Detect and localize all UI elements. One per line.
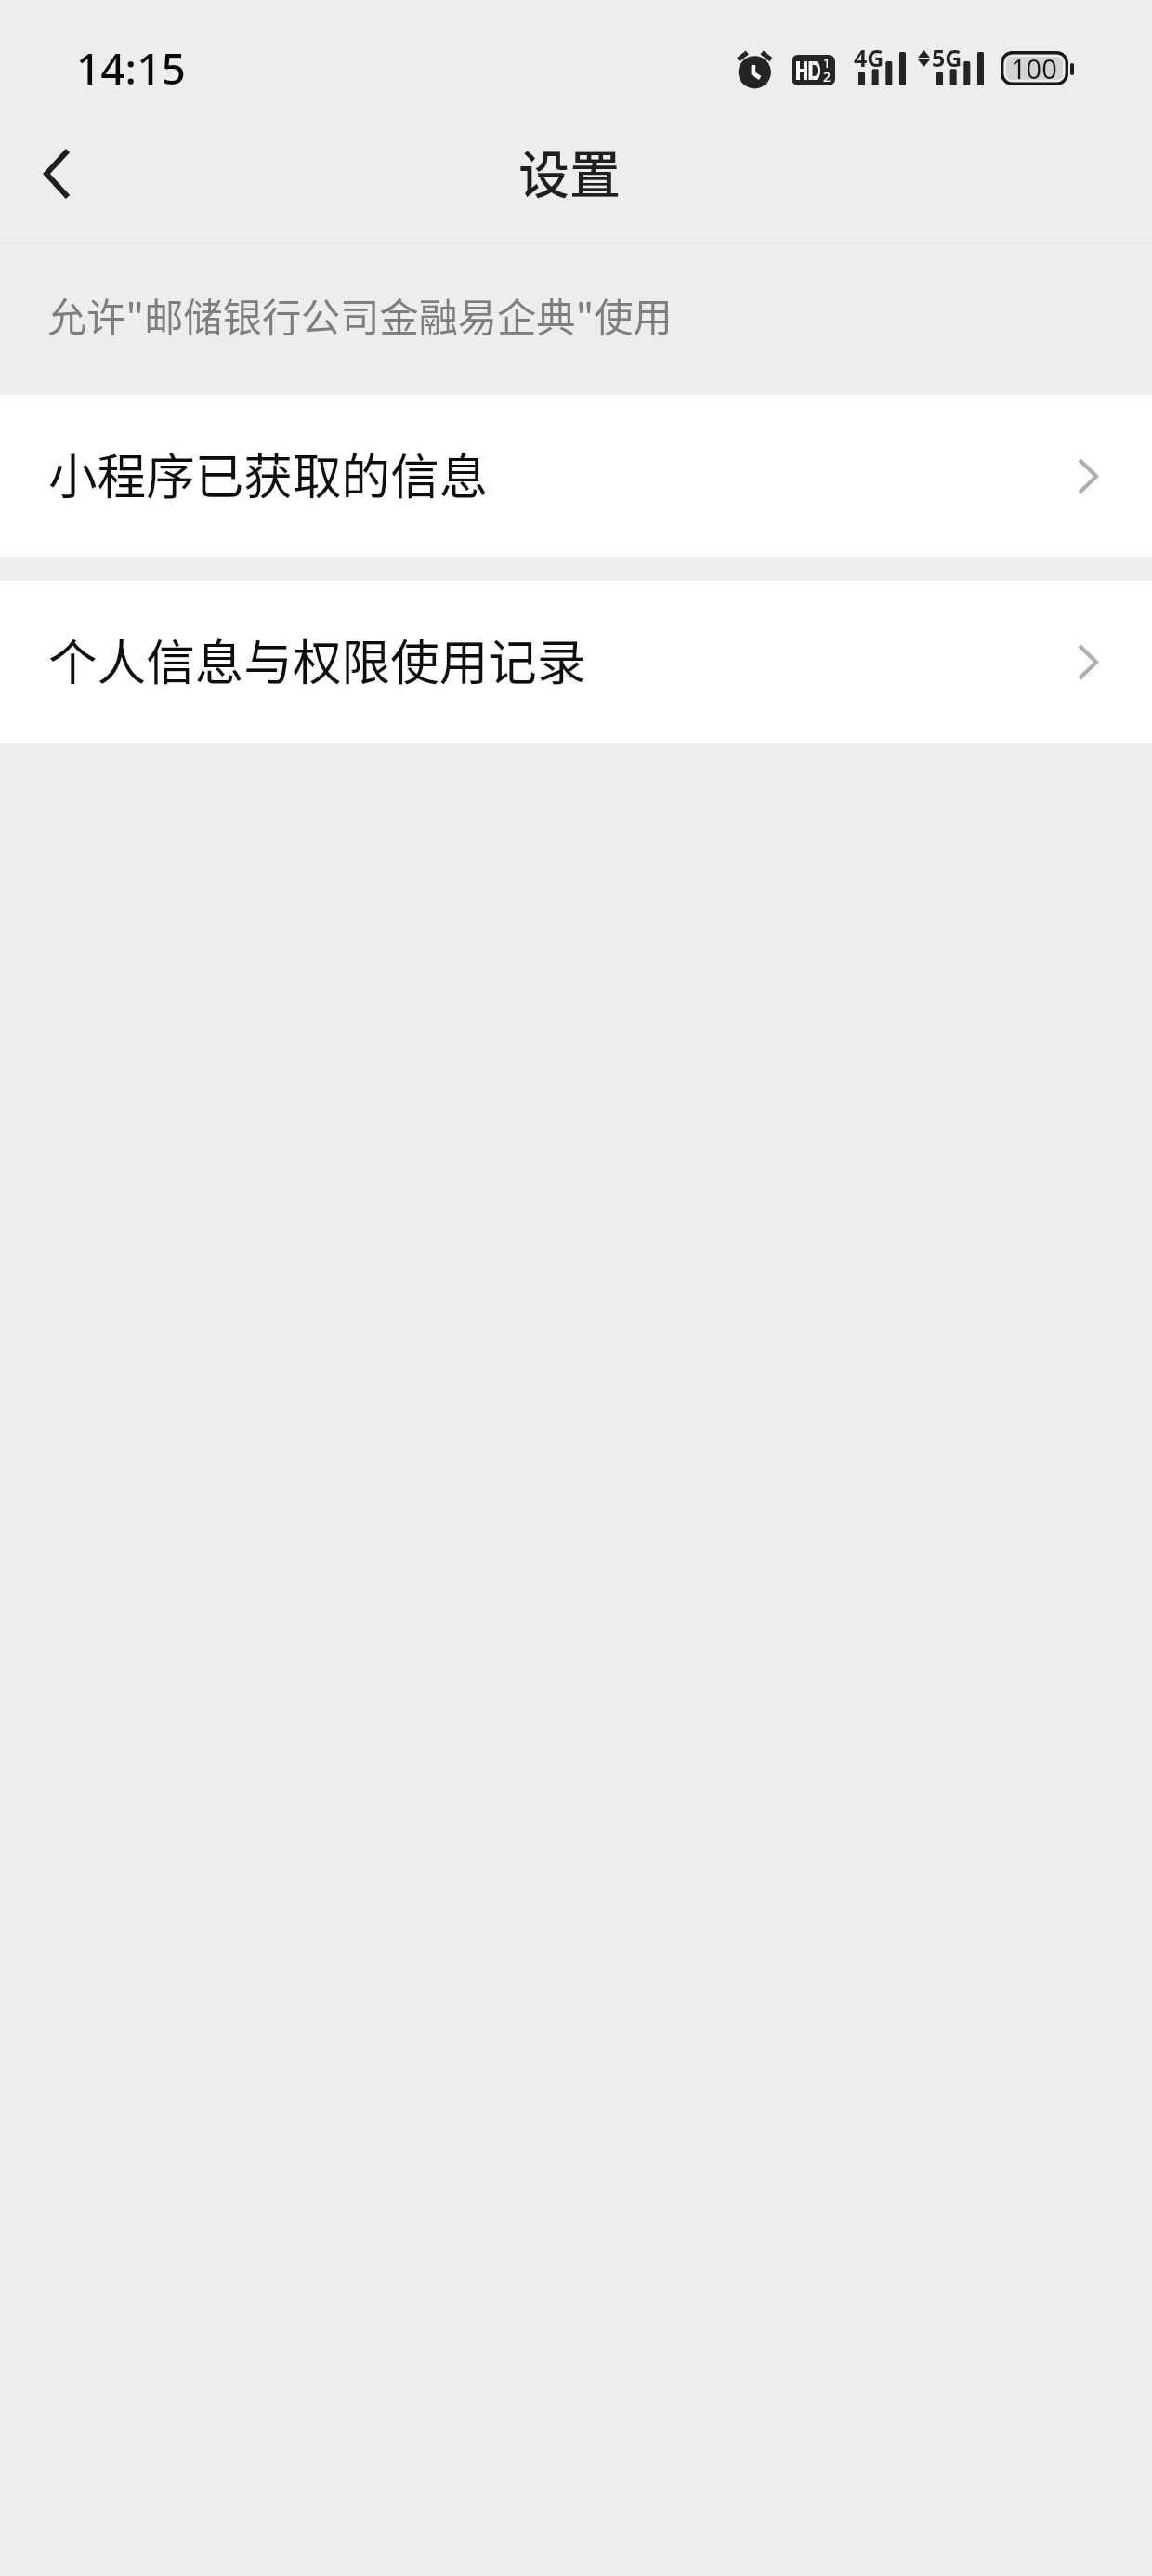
staticText: 4G (854, 42, 884, 73)
staticText: 100 (1011, 50, 1057, 85)
staticText: 个人信息与权限使用记录 (48, 624, 586, 694)
staticText: 1 (823, 55, 831, 72)
button[interactable]: 小程序已获取的信息 (0, 395, 1152, 557)
button[interactable]: 返回 (5, 122, 109, 226)
staticText: 设置 (518, 134, 622, 208)
staticText: 小程序已获取的信息 (48, 438, 489, 508)
staticText: 允许"邮储银行公司金融易企典"使用 (47, 286, 673, 343)
staticText: 2 (823, 68, 831, 85)
button[interactable]: 个人信息与权限使用记录 (0, 581, 1152, 743)
staticText: 5G (932, 42, 962, 73)
staticText: 14:15 (76, 39, 186, 98)
